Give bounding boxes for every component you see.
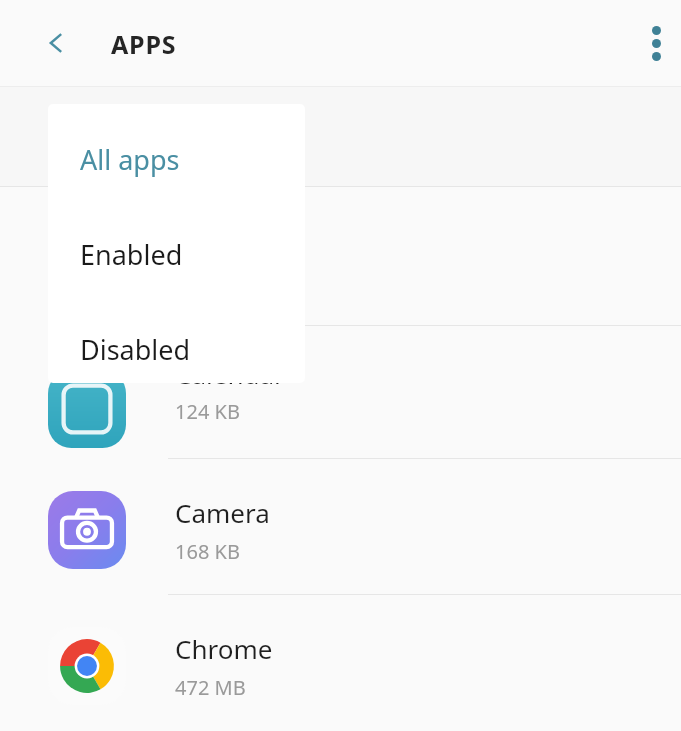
button[interactable]: More options [630,14,681,72]
staticText: 472 MB [175,674,246,701]
staticText: APPS [111,27,177,61]
staticText: 168 KB [175,538,240,565]
button[interactable]: Calendar [0,330,681,458]
staticText: Chrome [175,631,273,666]
staticText: Calendar [175,356,285,391]
staticText: Disabled [80,331,191,368]
staticText: 124 KB [175,398,240,425]
button[interactable]: Enabled [48,220,305,288]
button[interactable]: Camera [0,466,681,594]
button[interactable]: Back [30,17,82,69]
staticText: Enabled [80,236,183,273]
button[interactable]: All apps [48,125,305,193]
staticText: All apps [80,141,180,178]
staticText: Camera [175,495,270,530]
staticText: Calculator [175,222,299,257]
button[interactable]: Calculator [0,196,681,324]
button[interactable]: Disabled [48,315,305,383]
button[interactable]: Chrome [0,602,681,730]
